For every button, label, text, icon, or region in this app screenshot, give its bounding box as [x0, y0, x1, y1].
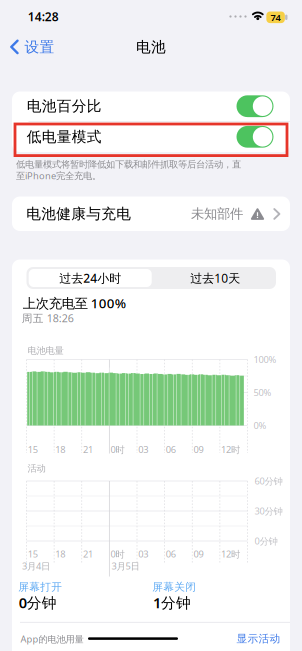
staticText: 0时 [111, 443, 125, 456]
staticText: 周五 18:26 [22, 311, 74, 325]
button[interactable]: 低电量模式 [236, 126, 273, 148]
staticText: 活动 [27, 463, 45, 474]
button[interactable]: 电池百分比 [236, 95, 273, 117]
staticText: 03 [138, 443, 148, 456]
staticText: 60分钟 [254, 475, 282, 487]
staticText: 0分钟 [19, 593, 57, 612]
staticText: 屏幕打开 [18, 580, 62, 593]
button[interactable]: 电池健康与充电 [12, 197, 290, 231]
staticText: 30分钟 [254, 505, 282, 517]
staticText: 12时 [221, 548, 240, 560]
staticText: 3月5日 [111, 560, 139, 572]
staticText: 3月4日 [22, 560, 50, 572]
staticText: 过去10天 [190, 270, 240, 286]
staticText: 电池 [136, 38, 166, 56]
staticText: 未知部件 [191, 206, 243, 222]
staticText: 0分钟 [254, 535, 277, 547]
staticText: 21 [83, 443, 93, 456]
staticText: 电池健康与充电 [26, 205, 131, 223]
staticText: 06 [166, 548, 176, 560]
staticText: 15 [28, 548, 38, 560]
staticText: 显示活动 [236, 632, 280, 645]
staticText: 09 [193, 443, 203, 456]
staticText: 至iPhone完全充电。 [16, 169, 101, 182]
staticText: 12时 [221, 443, 240, 456]
staticText: 0% [253, 419, 266, 432]
staticText: 屏幕关闭 [152, 580, 196, 593]
staticText: 50% [253, 386, 271, 399]
button[interactable]: 返回设置 [9, 32, 75, 62]
staticText: 0时 [111, 548, 125, 560]
staticText: 上次充电至 100% [23, 294, 126, 312]
staticText: 15 [28, 443, 38, 456]
staticText: 电池百分比 [27, 97, 102, 115]
staticText: 09 [193, 548, 203, 560]
staticText: 100% [253, 353, 276, 366]
staticText: 设置 [24, 38, 54, 56]
button[interactable]: 过去10天 [155, 268, 275, 288]
staticText: 21 [83, 548, 93, 560]
staticText: 1分钟 [153, 593, 191, 612]
staticText: 过去24小时 [59, 270, 121, 286]
staticText: 03 [138, 548, 148, 560]
button[interactable]: 显示活动 [220, 629, 280, 649]
staticText: 18 [55, 548, 65, 560]
staticText: 06 [166, 443, 176, 456]
staticText: 电池电量 [27, 345, 63, 356]
staticText: 低电量模式将暂时降低如下载和邮件抓取等后台活动，直 [16, 159, 241, 170]
staticText: 74 [271, 11, 281, 23]
button[interactable]: 过去24小时 [29, 269, 152, 287]
staticText: App的电池用量 [20, 633, 83, 645]
staticText: 18 [55, 443, 65, 456]
staticText: 低电量模式 [27, 128, 102, 146]
staticText: 14:28 [28, 9, 59, 24]
